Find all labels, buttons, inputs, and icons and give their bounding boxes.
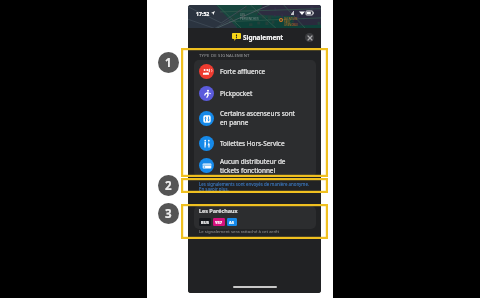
staticText: A5 [229,220,235,225]
staticText: Signalement [243,33,284,42]
staticText: Les Paréchaux [199,207,238,215]
staticText: 2 [165,178,172,194]
staticText: AVENTURE PARC GRENOBLE [284,17,298,27]
button[interactable]: Toilettes Hors-Service [194,132,316,154]
staticText: TYPE DE SIGNALEMENT [199,53,250,59]
button[interactable]: Pickpocket [194,83,316,104]
button[interactable]: Les Paréchaux [194,206,316,229]
staticText: Le signalement sera rattaché à cet arrêt [199,228,280,234]
button[interactable]: Forte affluence [194,60,316,83]
staticText: 17:52 [196,10,210,17]
button[interactable]: Les signalements sont envoyés de manière… [199,181,310,192]
staticText: BUS [201,220,209,225]
staticText: 3 [165,206,172,222]
staticText: Toilettes Hors-Service [220,139,285,148]
button[interactable]: Fermer [305,33,314,42]
staticText: Y57 [215,220,223,225]
staticText: 1 [165,55,172,71]
staticText: LES PERVENCHES [240,13,259,21]
button[interactable]: Certains ascenseurs sont en panne [194,104,316,132]
button[interactable]: Aucun distributeur de tickets fonctionne… [194,154,316,177]
staticText: Aucun distributeur de tickets fonctionne… [220,157,286,175]
staticText: Certains ascenseurs sont en panne [220,109,295,127]
staticText: Pickpocket [220,89,253,98]
staticText: Forte affluence [220,67,266,76]
